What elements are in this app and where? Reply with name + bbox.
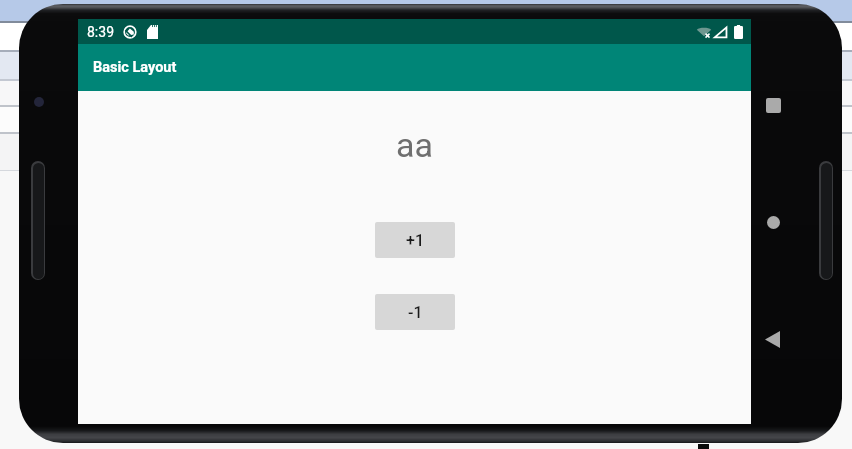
staticText: aa (396, 125, 433, 165)
button[interactable]: Recent apps (766, 98, 781, 113)
button[interactable]: Home (767, 216, 780, 229)
staticText: 8:39 (87, 24, 114, 40)
staticText: Basic Layout (93, 59, 177, 76)
staticText: -1 (408, 303, 423, 322)
staticText: +1 (406, 231, 424, 250)
button[interactable]: +1 (375, 222, 455, 258)
button[interactable]: -1 (375, 294, 455, 330)
button[interactable]: Back (765, 331, 780, 348)
